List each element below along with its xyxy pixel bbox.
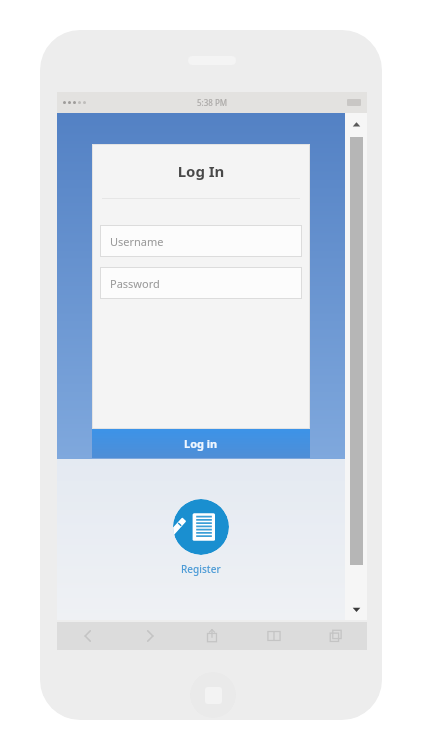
button[interactable]: Log in [92, 429, 310, 458]
button[interactable]: Bookmarks [243, 622, 305, 650]
button[interactable]: Password [100, 267, 302, 299]
button[interactable]: Register [173, 499, 229, 555]
staticText: Password [110, 276, 160, 291]
staticText: Log In [92, 161, 310, 181]
button[interactable]: Scroll down [345, 598, 367, 620]
staticText: Log in [184, 436, 218, 451]
staticText: Username [110, 234, 164, 249]
button[interactable]: Scroll up [345, 113, 367, 135]
button[interactable]: Tabs [305, 622, 367, 650]
staticText: 5:38 PM [197, 97, 228, 108]
button[interactable]: Share [181, 622, 243, 650]
button[interactable]: Home [190, 672, 236, 718]
staticText: Register [181, 562, 221, 576]
button[interactable]: Username [100, 225, 302, 257]
